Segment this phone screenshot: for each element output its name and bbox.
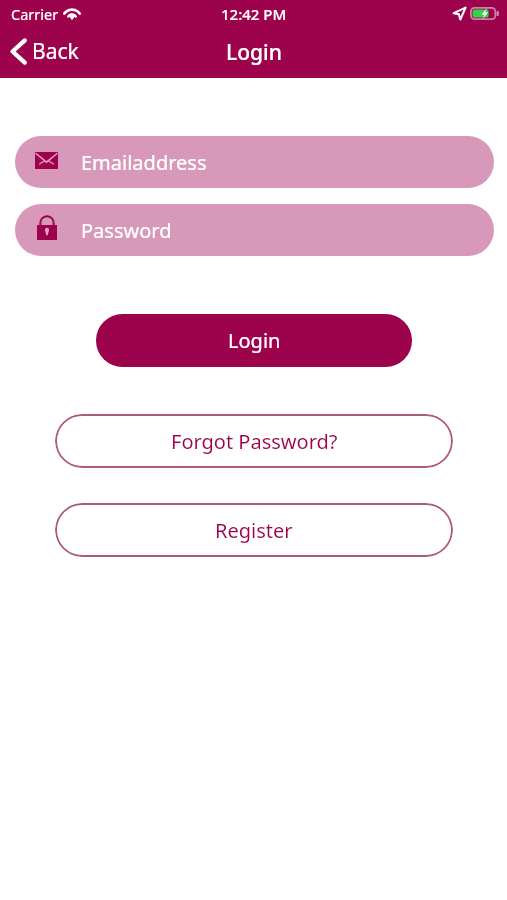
staticText: Emailaddress <box>81 149 207 176</box>
button[interactable]: Back <box>10 37 79 66</box>
button[interactable]: Login <box>96 314 412 367</box>
staticText: 12:42 PM <box>221 4 287 24</box>
staticText: Register <box>215 517 293 544</box>
button[interactable]: Register <box>55 503 453 557</box>
staticText: Login <box>228 327 281 354</box>
staticText: Back <box>32 37 79 66</box>
staticText: Login <box>226 38 282 67</box>
button[interactable]: Password <box>15 204 494 256</box>
staticText: Password <box>81 217 172 244</box>
staticText: Carrier <box>11 4 59 24</box>
button[interactable]: Emailaddress <box>15 136 494 188</box>
staticText: Forgot Password? <box>171 428 338 455</box>
button[interactable]: Forgot Password? <box>55 414 453 468</box>
